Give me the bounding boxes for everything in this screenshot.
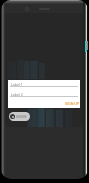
staticText: SIGN IN <box>16 115 27 119</box>
staticText: Label 1 <box>11 82 23 87</box>
button[interactable]: SIGN IN <box>9 112 30 121</box>
button[interactable]: SIGN UP <box>65 101 80 106</box>
staticText: Label 2 <box>11 92 23 97</box>
